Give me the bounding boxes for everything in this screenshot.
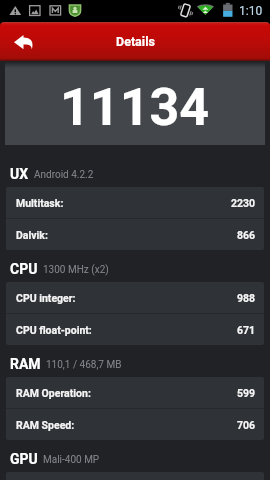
staticText: Dalvik: — [16, 229, 48, 241]
staticText: CPU — [10, 261, 38, 277]
button[interactable]: Back — [0, 22, 46, 61]
staticText: CPU float-point: — [16, 324, 92, 336]
staticText: 671 — [237, 324, 256, 336]
staticText: Mali-400 MP — [43, 454, 100, 466]
staticText: 866 — [237, 229, 256, 241]
button[interactable]: RAM Operation: — [6, 377, 264, 408]
staticText: Multitask: — [16, 197, 64, 209]
staticText: 988 — [237, 292, 256, 304]
button[interactable]: Multitask: — [6, 187, 264, 218]
button[interactable]: CPU float-point: — [6, 314, 264, 345]
staticText: UX — [10, 166, 29, 182]
staticText: 1300 MHz (x2) — [43, 264, 109, 276]
staticText: 2230 — [231, 197, 256, 209]
staticText: Android 4.2.2 — [34, 169, 94, 181]
staticText: 706 — [237, 419, 256, 431]
staticText: 1:10 — [239, 4, 263, 18]
staticText: CPU integer: — [16, 292, 76, 304]
staticText: 110,1 / 468,7 MB — [46, 359, 122, 371]
staticText: 11134 — [60, 77, 210, 138]
staticText: GPU — [10, 451, 38, 467]
button[interactable]: CPU integer: — [6, 282, 264, 313]
button[interactable]: RAM Speed: — [6, 409, 264, 440]
staticText: RAM Speed: — [16, 419, 75, 431]
staticText: RAM Operation: — [16, 387, 91, 399]
staticText: 599 — [237, 387, 256, 399]
button[interactable]: Dalvik: — [6, 219, 264, 250]
staticText: RAM — [10, 356, 41, 372]
staticText: Details — [116, 34, 155, 49]
